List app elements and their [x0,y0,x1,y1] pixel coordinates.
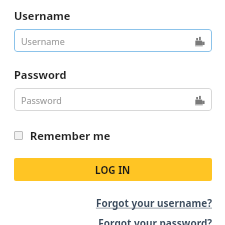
staticText: Password [21,94,193,106]
staticText: LOG IN [95,163,131,177]
button[interactable]: LOG IN [14,158,212,181]
staticText: Remember me [30,128,111,143]
button[interactable]: Forgot your username? [14,196,212,210]
staticText: Username [14,8,71,23]
button[interactable]: Remember me [14,127,111,144]
staticText: Username [21,35,193,47]
button[interactable]: Autofill Password [193,94,205,106]
staticText: Forgot your username? [95,196,212,210]
button[interactable]: Forgot your password? [14,216,212,225]
staticText: Forgot your password? [98,216,212,225]
staticText: Password [14,67,67,82]
button[interactable]: Username [14,29,212,52]
button[interactable]: Password [14,88,212,111]
button[interactable]: Autofill Username [193,35,205,47]
